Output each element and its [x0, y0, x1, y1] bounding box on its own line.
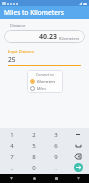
button[interactable]: Kilometers: [30, 79, 60, 84]
staticText: 2: [32, 131, 36, 139]
staticText: 5: [32, 142, 36, 150]
button[interactable]: Space: [67, 140, 89, 151]
staticText: 25: [8, 55, 16, 64]
staticText: 40.23: [39, 32, 57, 42]
staticText: Miles: [37, 86, 46, 91]
button[interactable]: 9: [45, 151, 67, 162]
staticText: Distance: [10, 23, 26, 28]
button[interactable]: 8: [23, 151, 45, 162]
button[interactable]: 25: [8, 55, 81, 66]
staticText: Input Distance: [8, 49, 35, 54]
button[interactable]: Miles: [30, 86, 60, 91]
staticText: ,: [11, 164, 13, 172]
button[interactable]: Back: [0, 174, 23, 183]
staticText: 4: [10, 142, 14, 150]
staticText: .: [55, 164, 57, 172]
button[interactable]: ,: [0, 162, 23, 173]
button[interactable]: 1: [0, 129, 23, 140]
staticText: 9: [54, 153, 58, 161]
button[interactable]: Home: [23, 174, 45, 183]
staticText: Convert to: [36, 72, 54, 77]
staticText: Miles to Kilometers: [4, 8, 64, 17]
staticText: 8: [32, 153, 36, 161]
button[interactable]: Backspace: [67, 151, 89, 162]
staticText: 6: [54, 142, 58, 150]
button[interactable]: 6: [45, 140, 67, 151]
staticText: 1: [10, 131, 14, 139]
button[interactable]: Enter: [67, 162, 89, 173]
staticText: Kilometers: [37, 79, 56, 84]
button[interactable]: Keyboard: [67, 174, 89, 183]
button[interactable]: 4: [0, 140, 23, 151]
button[interactable]: 7: [0, 151, 23, 162]
button[interactable]: Minus: [67, 129, 89, 140]
staticText: 7: [10, 153, 14, 161]
button[interactable]: 40.23: [4, 30, 85, 43]
button[interactable]: Recents: [45, 174, 67, 183]
button[interactable]: 3: [45, 129, 67, 140]
button[interactable]: 2: [23, 129, 45, 140]
staticText: 0: [32, 164, 36, 172]
button[interactable]: 5: [23, 140, 45, 151]
staticText: Kilometers: [59, 36, 80, 41]
staticText: 3: [54, 131, 58, 139]
button[interactable]: 0: [23, 162, 45, 173]
